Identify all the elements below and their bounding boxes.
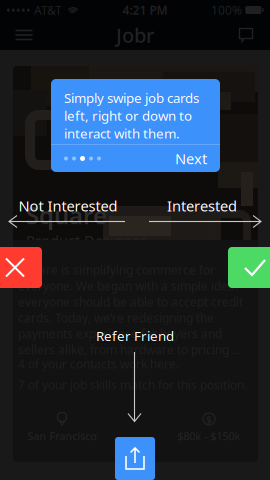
staticText: Next	[175, 149, 207, 168]
button[interactable]: Menu	[6, 20, 42, 50]
button[interactable]: Next	[175, 149, 207, 168]
staticText: 4:21 PM	[122, 2, 167, 18]
staticText: 7 of your job skills match for this posi…	[18, 377, 247, 393]
staticText: Not Interested	[18, 196, 117, 215]
staticText: Product Designer	[26, 231, 146, 250]
staticText: $80k - $150k	[177, 429, 240, 443]
staticText: Jobr	[116, 22, 154, 48]
button[interactable]: Not interested	[0, 247, 42, 288]
staticText: $	[206, 412, 212, 426]
staticText: San Francisco	[27, 429, 96, 443]
staticText: Square	[26, 199, 107, 231]
staticText: AT&T	[31, 2, 62, 18]
button[interactable]: Messages	[228, 20, 264, 50]
staticText: •••••	[6, 2, 31, 18]
staticText: Interested	[167, 196, 237, 215]
staticText: Simply swipe job cards left, right or do…	[64, 89, 199, 142]
staticText: 100%	[211, 2, 242, 18]
staticText: Square is simplifying commerce for every…	[18, 262, 243, 358]
button[interactable]: Share	[115, 437, 155, 480]
button[interactable]: Interested	[228, 247, 270, 288]
staticText: 4 of your contacts work here.	[18, 356, 179, 372]
staticText: Refer Friend	[96, 327, 174, 345]
